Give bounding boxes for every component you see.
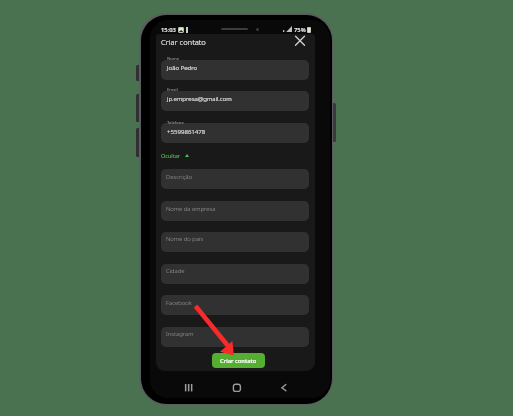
button[interactable] xyxy=(161,91,309,111)
button[interactable] xyxy=(161,201,309,221)
button[interactable]: Close xyxy=(294,34,306,46)
button[interactable] xyxy=(161,264,309,284)
button[interactable]: Back xyxy=(277,380,293,396)
staticText: Instagram xyxy=(166,330,194,338)
staticText: Email xyxy=(167,87,178,93)
staticText: Criar contato xyxy=(220,357,257,365)
staticText: 15:03 xyxy=(161,26,176,34)
staticText: Descrição xyxy=(166,173,193,181)
staticText: Cidade xyxy=(166,267,185,275)
staticText: 75% xyxy=(294,26,306,34)
staticText: Ocultar xyxy=(161,152,181,159)
staticText: Criar contato xyxy=(161,37,206,47)
staticText: Nome da empresa xyxy=(166,205,216,213)
staticText: Telefone xyxy=(167,120,184,126)
button[interactable] xyxy=(161,327,309,347)
staticText: +5599861478 xyxy=(167,127,206,135)
staticText: Facebook xyxy=(166,299,192,307)
button[interactable] xyxy=(161,232,309,252)
button[interactable]: Criar contato xyxy=(212,353,265,368)
staticText: jp.empresa@gmail.com xyxy=(167,94,232,102)
button[interactable]: Home xyxy=(229,380,245,396)
staticText: João Pedro xyxy=(167,63,198,71)
button[interactable]: Ocultar xyxy=(161,152,189,159)
staticText: Nome xyxy=(167,56,179,62)
button[interactable]: Recent apps xyxy=(180,380,196,396)
button[interactable] xyxy=(161,123,309,143)
button[interactable] xyxy=(161,169,309,189)
button[interactable] xyxy=(161,60,309,80)
button[interactable] xyxy=(161,295,309,315)
staticText: Nome do país xyxy=(166,235,204,243)
